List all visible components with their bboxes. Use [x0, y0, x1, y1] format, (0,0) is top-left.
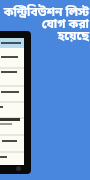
staticText: কন্ট্রিবিউশন লিস্ট — [3, 5, 89, 21]
button[interactable]: App preview — [0, 31, 31, 174]
staticText: যোগ করা — [41, 17, 89, 33]
staticText: হয়েছে — [57, 29, 89, 45]
